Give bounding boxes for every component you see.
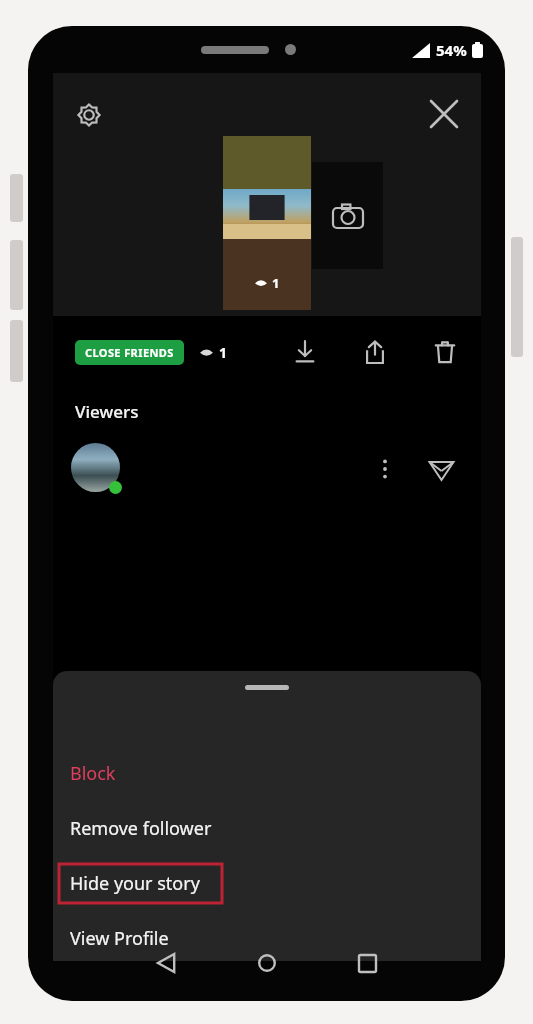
button[interactable]: Close bbox=[421, 91, 467, 137]
button[interactable]: Block bbox=[53, 746, 481, 801]
button[interactable]: Home bbox=[239, 943, 295, 983]
button[interactable]: More options bbox=[365, 449, 405, 489]
staticText: Remove follower bbox=[70, 816, 212, 841]
button[interactable]: Delete story bbox=[423, 330, 467, 374]
button[interactable]: Share story bbox=[353, 330, 397, 374]
button[interactable]: Hide your story bbox=[53, 856, 481, 911]
button[interactable]: View Profile bbox=[53, 911, 481, 961]
staticText: View Profile bbox=[70, 926, 169, 951]
button[interactable]: CLOSE FRIENDS bbox=[75, 340, 184, 365]
button[interactable]: Remove follower bbox=[53, 801, 481, 856]
staticText: Hide your story bbox=[70, 871, 200, 896]
staticText: Viewers bbox=[75, 400, 139, 423]
button[interactable]: Send message bbox=[419, 447, 463, 491]
button[interactable]: Back bbox=[139, 943, 195, 983]
staticText: 1 bbox=[219, 343, 228, 362]
button[interactable]: Recent apps bbox=[339, 943, 395, 983]
button[interactable]: More options bbox=[53, 437, 481, 501]
staticText: CLOSE FRIENDS bbox=[85, 345, 174, 360]
button[interactable]: Save to device bbox=[283, 330, 327, 374]
staticText: 54% bbox=[436, 40, 467, 60]
staticText: Block bbox=[70, 761, 116, 786]
button[interactable]: Story settings bbox=[67, 93, 111, 137]
staticText: 1 bbox=[272, 274, 280, 292]
button[interactable]: Add to story with camera bbox=[312, 162, 383, 269]
